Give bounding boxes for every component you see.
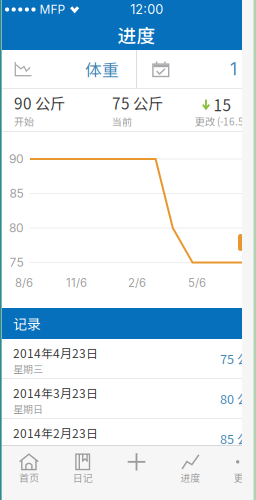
button[interactable]: 日记 <box>56 445 110 485</box>
staticText: 5/6 <box>188 276 206 290</box>
staticText: 85 <box>9 186 23 201</box>
staticText: 星期三 <box>13 361 43 376</box>
staticText: 当前 <box>112 114 132 128</box>
staticText: 1 <box>230 58 237 79</box>
staticText: 12:00 <box>130 2 163 17</box>
staticText: 星期日 <box>13 441 43 456</box>
button[interactable]: 更多 <box>217 445 256 485</box>
staticText: 75 <box>9 255 23 270</box>
staticText: 90 <box>9 152 24 166</box>
staticText: MFP <box>40 2 66 17</box>
staticText: 开始 <box>14 114 34 128</box>
staticText: 2014年2月23日 <box>13 424 98 441</box>
staticText: 11/6 <box>66 276 87 290</box>
staticText: 2014年4月23日 <box>13 344 98 361</box>
staticText: 15 <box>213 93 231 116</box>
staticText: 记录 <box>13 313 41 334</box>
staticText: 8/6 <box>15 276 33 290</box>
staticText: 85 公斤 <box>220 429 256 448</box>
staticText: 80 <box>9 221 24 235</box>
button[interactable]: 2014年4月23日 <box>2 339 256 378</box>
staticText: 2/6 <box>128 276 146 290</box>
staticText: 80 公斤 <box>220 389 256 408</box>
button[interactable]: 1 <box>137 50 256 88</box>
staticText: 星期日 <box>13 401 43 416</box>
staticText: 2014年3月23日 <box>13 384 98 401</box>
staticText: 90 公斤 <box>14 92 65 114</box>
staticText: 进度 <box>117 21 155 48</box>
staticText: 日记 <box>73 470 93 485</box>
button[interactable]: 首页 <box>2 445 56 485</box>
button[interactable]: 2014年3月23日 <box>2 379 256 418</box>
button[interactable]: 2014年2月23日 <box>2 419 256 445</box>
staticText: 75 公斤 <box>112 92 163 114</box>
staticText: 首页 <box>19 470 39 485</box>
button[interactable]: 添加 <box>110 445 163 485</box>
staticText: 体重 <box>85 57 119 81</box>
staticText: 75 公斤 <box>220 349 256 368</box>
staticText: 进度 <box>180 470 200 485</box>
staticText: 更多 <box>234 470 254 485</box>
button[interactable]: 体重 <box>2 50 136 88</box>
staticText: 更改 (-16.5 公斤) <box>195 114 256 128</box>
button[interactable]: 进度 <box>163 445 217 485</box>
